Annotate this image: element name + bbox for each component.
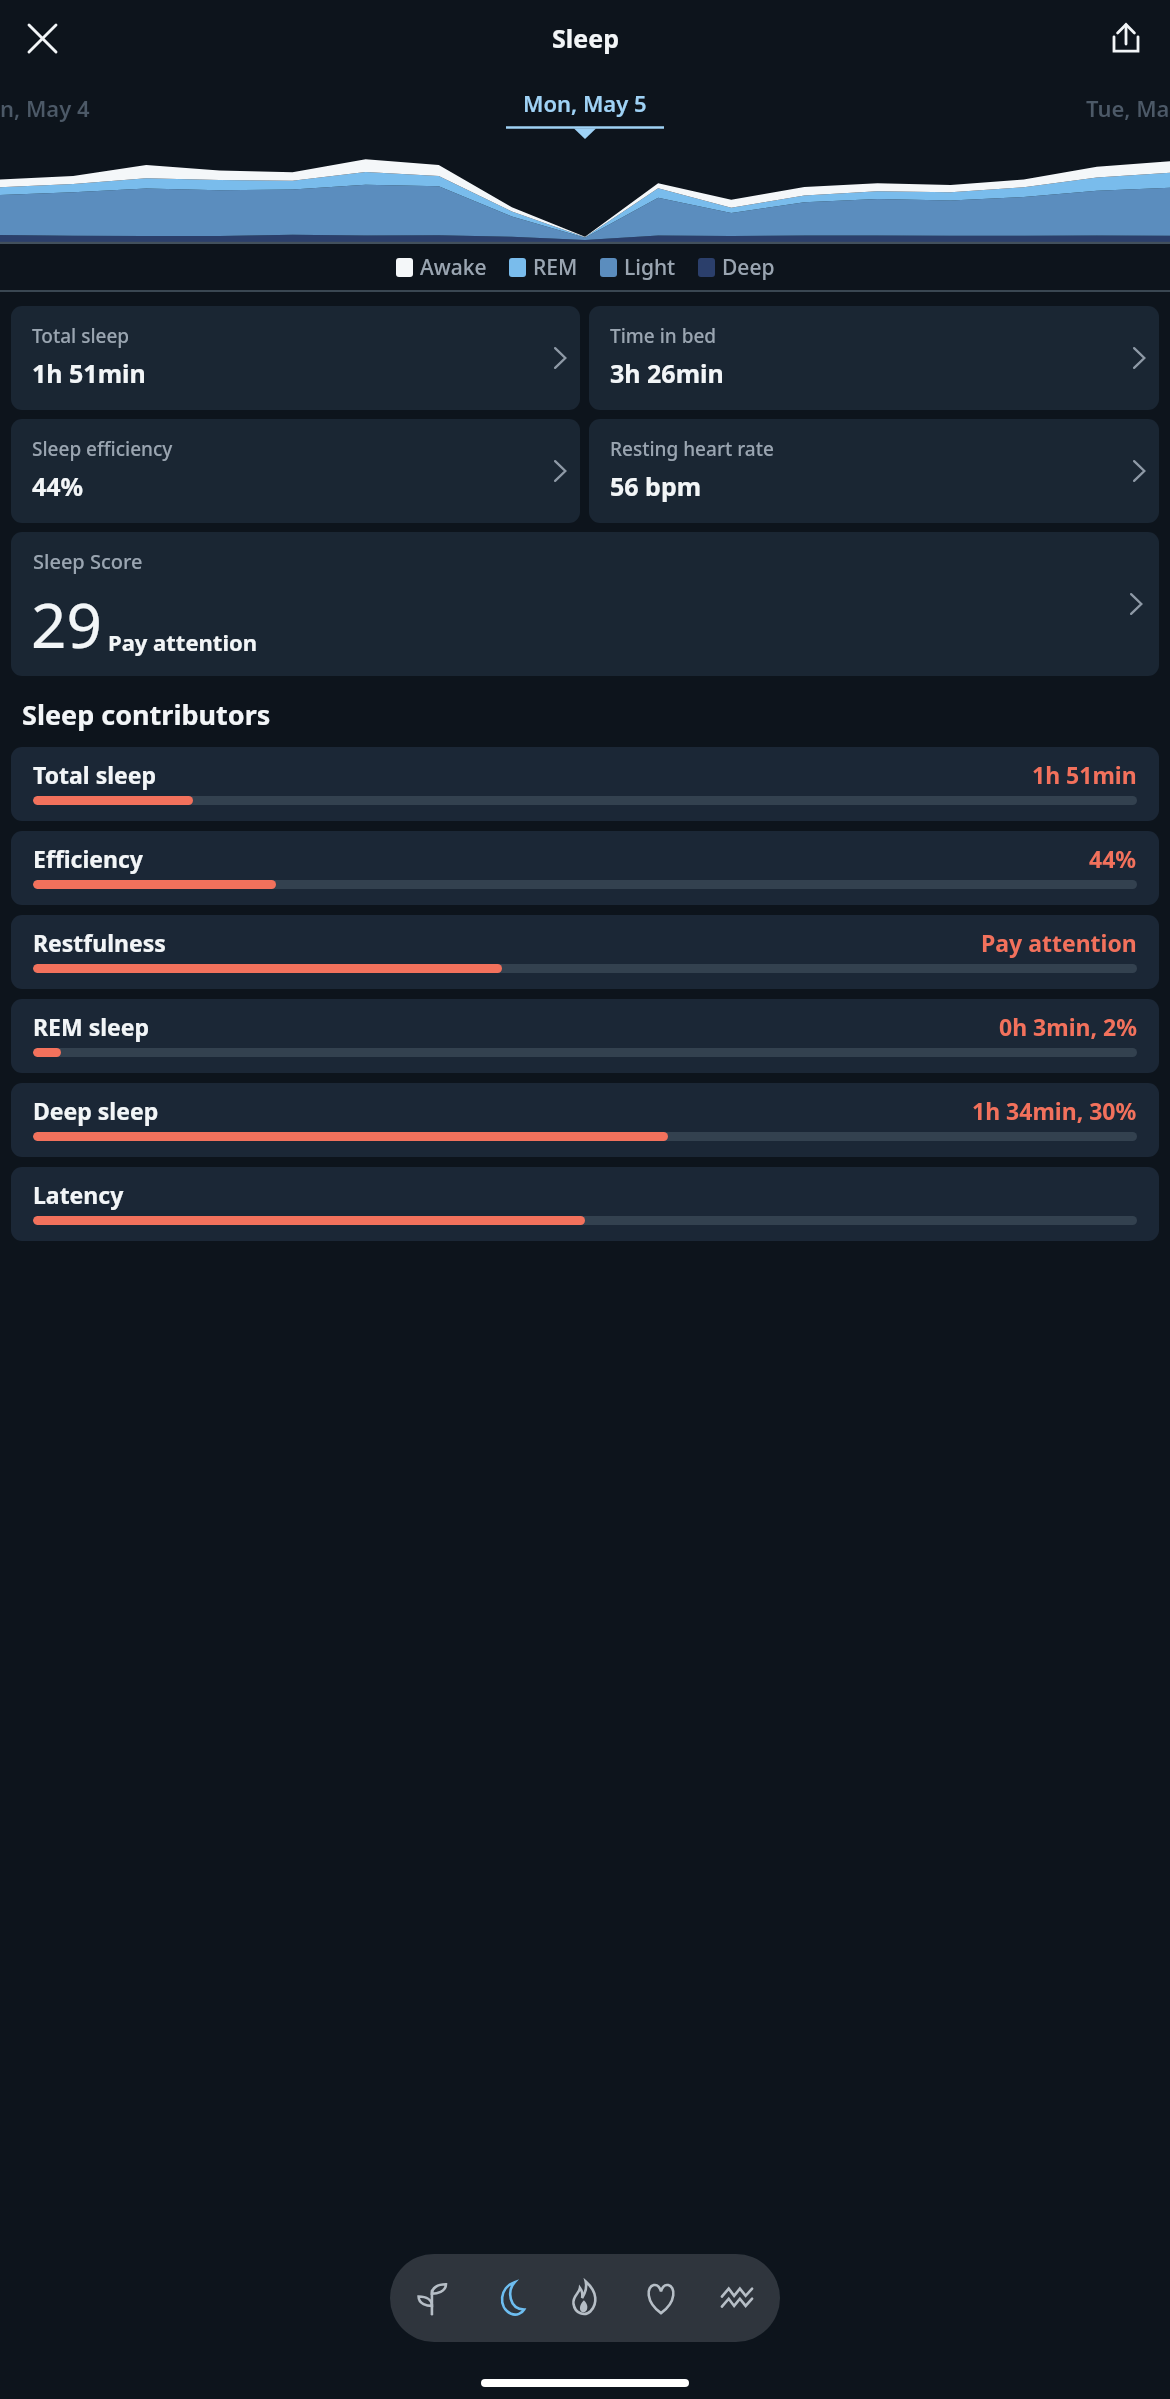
staticText: 29 <box>31 582 102 666</box>
button[interactable]: Share <box>1098 10 1154 66</box>
button[interactable]: Heart <box>628 2265 694 2331</box>
button[interactable]: Trends <box>704 2265 770 2331</box>
staticText: Sleep <box>552 21 619 55</box>
button[interactable]: Restfulness <box>11 915 1159 989</box>
button[interactable]: Sleep <box>476 2265 542 2331</box>
staticText: Restfulness <box>33 927 166 958</box>
staticText: 44% <box>1089 843 1137 874</box>
staticText: 56 bpm <box>610 469 702 503</box>
button[interactable]: Sleep efficiency <box>11 419 580 523</box>
staticText: 44% <box>32 469 84 503</box>
staticText: Time in bed <box>610 323 717 349</box>
staticText: Light <box>624 253 676 282</box>
staticText: Efficiency <box>33 843 143 874</box>
staticText: REM sleep <box>33 1011 150 1042</box>
staticText: Awake <box>420 253 487 282</box>
staticText: Deep <box>722 253 775 282</box>
button[interactable]: Latency <box>11 1167 1159 1241</box>
button[interactable]: Mon, May 5 <box>506 88 664 140</box>
button[interactable]: Activity <box>552 2265 618 2331</box>
button[interactable]: Resting heart rate <box>589 419 1159 523</box>
staticText: Sleep contributors <box>22 696 271 733</box>
staticText: 1h 34min, 30% <box>972 1095 1137 1126</box>
staticText: REM <box>533 253 578 282</box>
staticText: 3h 26min <box>610 356 724 390</box>
button[interactable]: Time in bed <box>589 306 1159 410</box>
button[interactable]: Sleep Score <box>11 532 1159 676</box>
button[interactable]: Close <box>14 10 70 66</box>
staticText: Pay attention <box>108 627 258 657</box>
staticText: Sleep efficiency <box>32 436 173 462</box>
staticText: Latency <box>33 1179 124 1210</box>
staticText: 0h 3min, 2% <box>999 1011 1137 1042</box>
staticText: Total sleep <box>33 759 157 790</box>
button[interactable]: n, May 4 <box>0 93 90 123</box>
staticText: Pay attention <box>981 927 1137 958</box>
staticText: Mon, May 5 <box>523 88 647 118</box>
button[interactable]: REM sleep <box>11 999 1159 1073</box>
button[interactable]: Total sleep <box>11 747 1159 821</box>
button[interactable]: Tue, Ma <box>1086 93 1170 123</box>
staticText: 1h 51min <box>1032 759 1137 790</box>
staticText: 1h 51min <box>32 356 146 390</box>
button[interactable]: Deep sleep <box>11 1083 1159 1157</box>
staticText: Deep sleep <box>33 1095 159 1126</box>
staticText: Resting heart rate <box>610 436 774 462</box>
button[interactable]: Efficiency <box>11 831 1159 905</box>
staticText: Total sleep <box>32 323 130 349</box>
staticText: Sleep Score <box>33 548 143 575</box>
button[interactable]: Total sleep <box>11 306 580 410</box>
button[interactable]: Readiness <box>400 2265 466 2331</box>
